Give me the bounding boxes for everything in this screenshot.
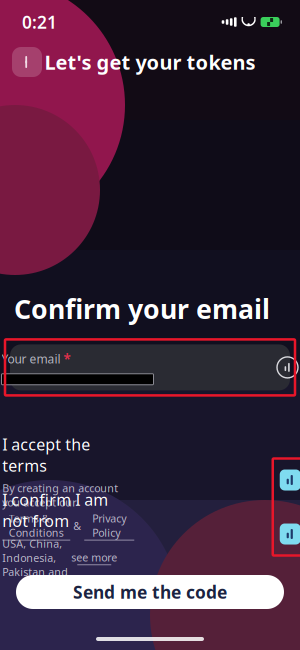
button[interactable]: see more [71,550,117,565]
staticText: & [70,519,84,533]
button[interactable]: Your email [5,339,295,395]
button[interactable]: Privacy Policy [84,511,134,540]
staticText: Terms & Conditions [9,511,64,540]
staticText: 0:21 [22,10,57,33]
staticText: Your email [1,351,60,367]
button[interactable]: Terms & Conditions [2,511,70,540]
staticText: I accept the terms [2,434,90,476]
staticText: By creating an account you accept our [2,481,118,509]
button[interactable]: Back [12,47,42,77]
staticText: Privacy Policy [92,511,126,540]
staticText: I confirm I am not from [2,489,108,531]
staticText: Confirm your email [14,291,270,326]
staticText: USA, China, Indonesia, Pakistan and [2,536,71,579]
button[interactable]: I accept the terms [280,469,300,490]
staticText: * [63,350,70,368]
button[interactable]: I confirm I am not from these countries [280,523,300,544]
staticText: Send me the code [73,580,227,603]
staticText: see more [71,550,117,564]
button[interactable]: Send me the code [16,575,284,609]
staticText: Let's get your tokens [44,49,255,75]
